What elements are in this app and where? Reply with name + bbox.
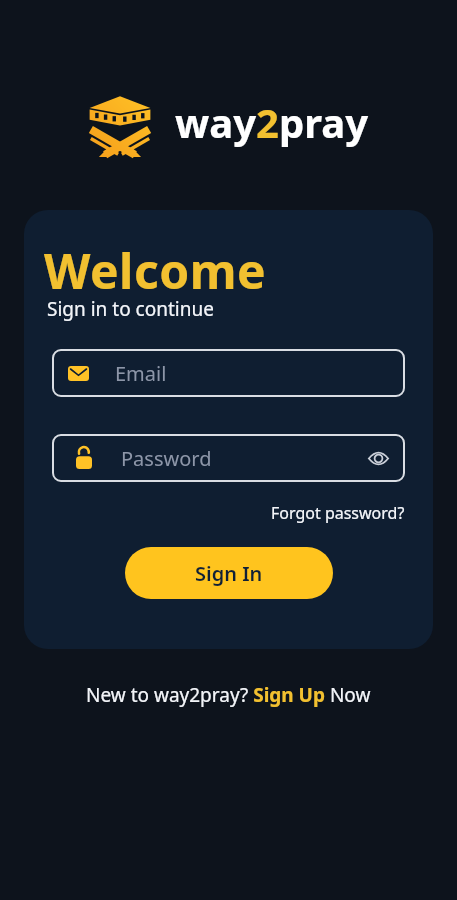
button[interactable]: Email (52, 349, 405, 397)
staticText: Sign in to continue (47, 296, 214, 322)
button[interactable]: Password (52, 434, 405, 482)
button[interactable]: Forgot password? (271, 502, 405, 524)
staticText: Password (121, 445, 212, 472)
staticText: way2pray (175, 95, 369, 149)
staticText: Email (115, 360, 167, 387)
button[interactable]: New to way2pray? Sign Up Now (86, 682, 371, 708)
button[interactable]: Sign In (125, 547, 333, 599)
staticText: Sign In (195, 560, 263, 587)
staticText: Welcome (44, 238, 267, 303)
